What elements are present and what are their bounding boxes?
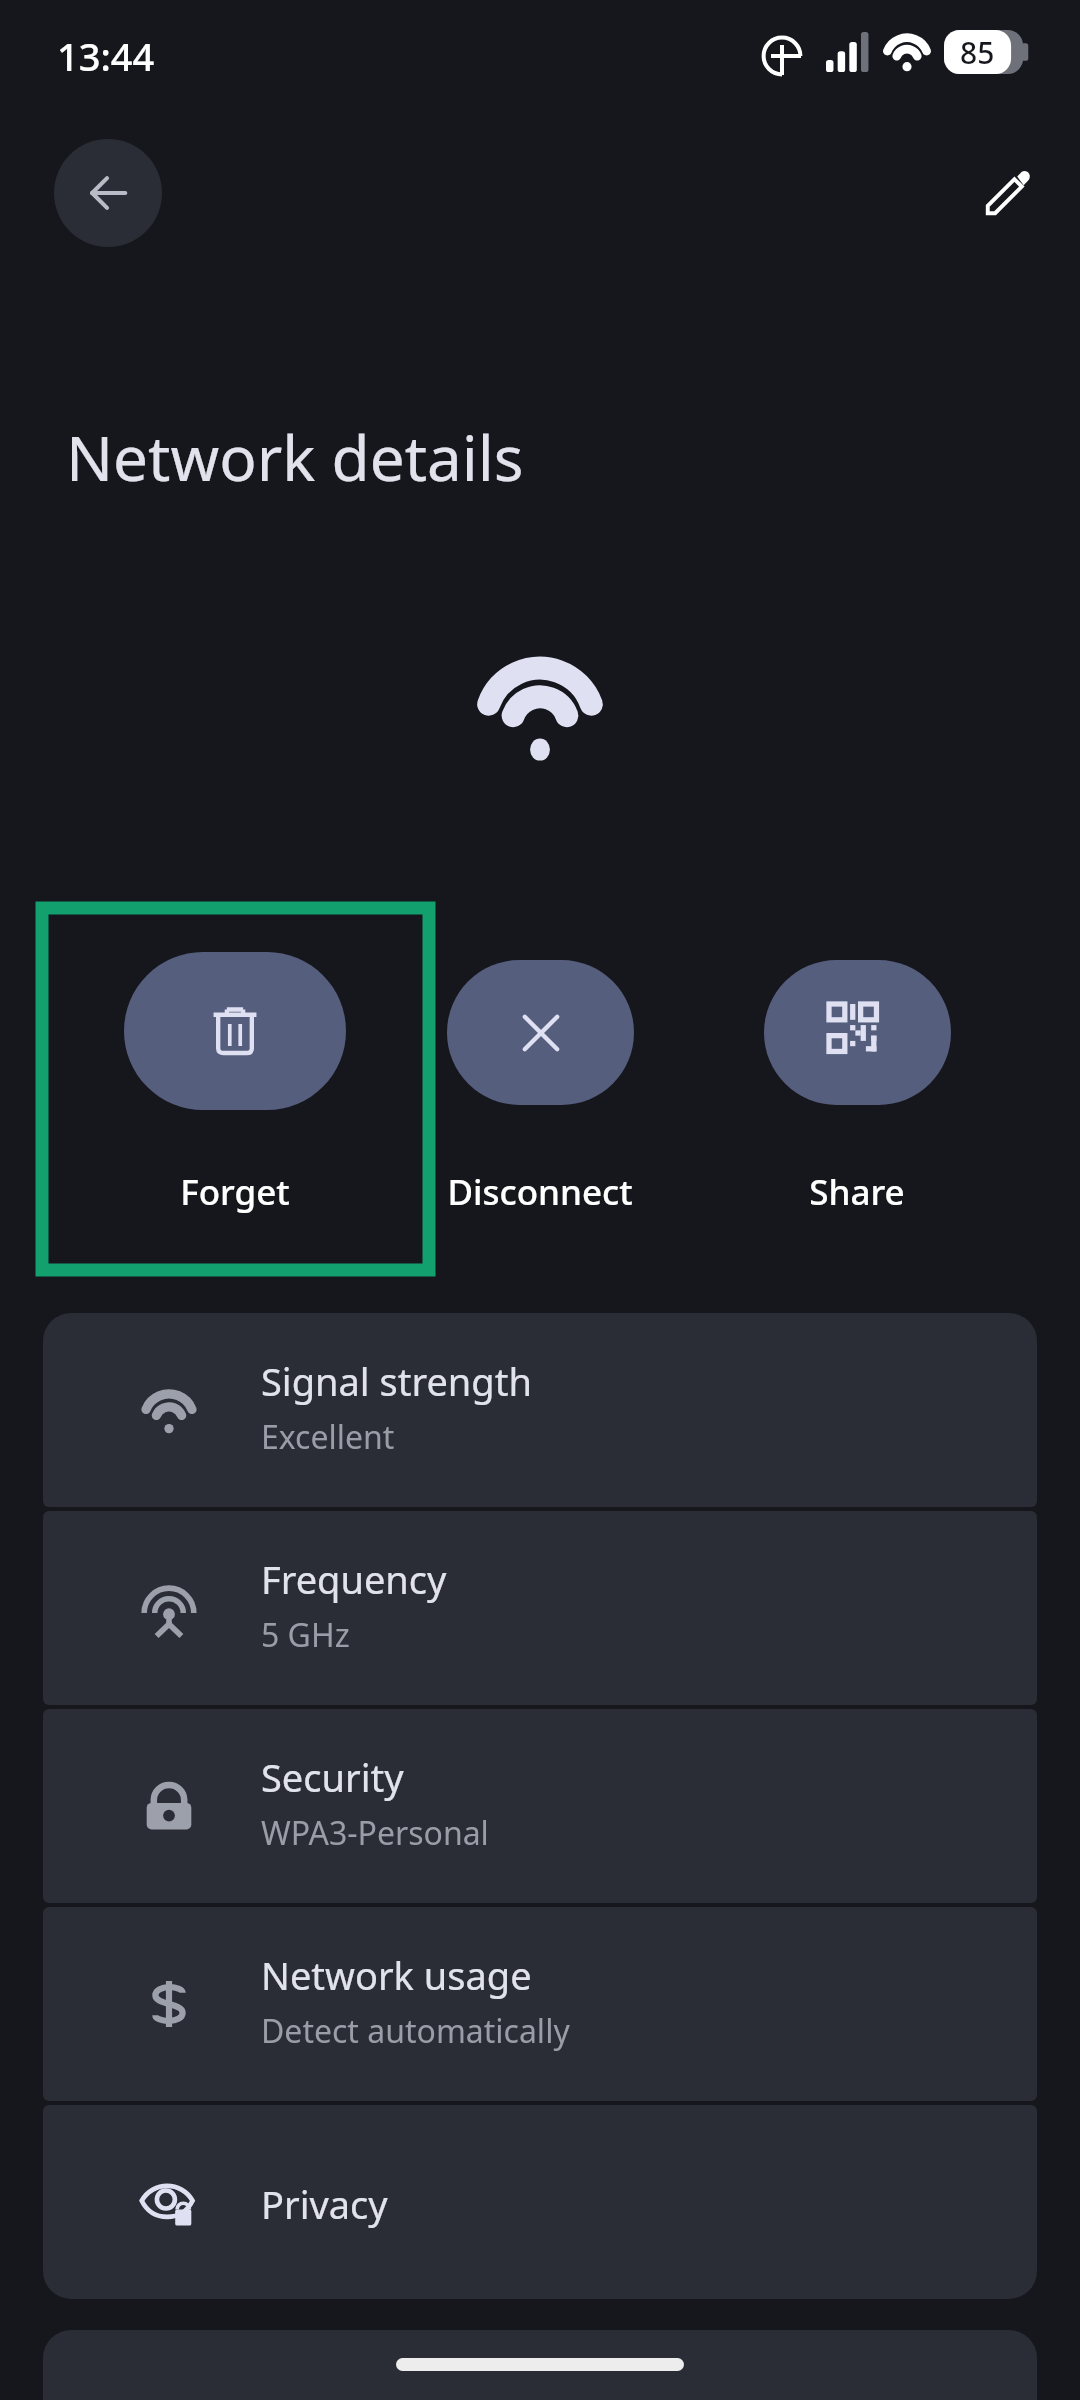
staticText: Share <box>809 1168 905 1216</box>
staticText: Frequency <box>261 1553 447 1605</box>
button[interactable]: Share <box>707 944 1007 1216</box>
button[interactable]: Network usage <box>43 1907 1037 2101</box>
staticText: Network usage <box>261 1949 532 2001</box>
button[interactable]: Security <box>43 1709 1037 1903</box>
staticText: Detect automatically <box>261 2009 570 2053</box>
staticText: Disconnect <box>447 1168 633 1216</box>
staticText: Network details <box>66 415 524 499</box>
button[interactable]: Forget <box>85 936 385 1216</box>
staticText: WPA3-Personal <box>261 1811 489 1855</box>
button[interactable]: Privacy <box>43 2105 1037 2299</box>
button[interactable]: Back <box>54 139 162 247</box>
staticText: 13:44 <box>57 30 155 82</box>
button[interactable]: Disconnect <box>390 944 690 1216</box>
staticText: 85 <box>960 32 995 73</box>
staticText: Excellent <box>261 1415 395 1459</box>
button[interactable]: Auto-connect <box>43 2330 1037 2400</box>
button[interactable]: Frequency <box>43 1511 1037 1705</box>
staticText: Security <box>261 1751 404 1803</box>
button[interactable]: Edit <box>960 145 1056 241</box>
staticText: Forget <box>180 1168 290 1216</box>
staticText: 5 GHz <box>261 1613 350 1657</box>
button[interactable]: Signal strength <box>43 1313 1037 1507</box>
staticText: Signal strength <box>261 1355 532 1407</box>
staticText: Privacy <box>261 2178 388 2230</box>
